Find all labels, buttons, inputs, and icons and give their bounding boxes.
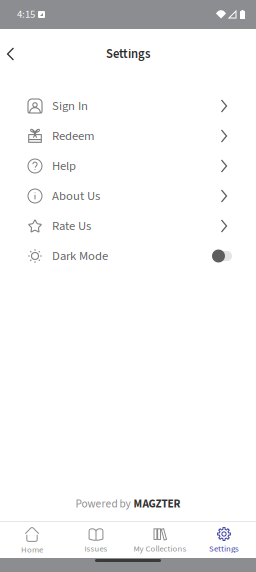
button[interactable]: Back xyxy=(0,29,25,79)
button[interactable]: Home xyxy=(0,521,64,558)
staticText: About Us xyxy=(52,187,100,205)
button[interactable]: About Us xyxy=(0,181,256,211)
staticText: Issues xyxy=(84,542,107,555)
button[interactable]: Rate Us xyxy=(0,211,256,241)
button[interactable]: Redeem xyxy=(0,121,256,151)
staticText: Redeem xyxy=(52,127,95,145)
staticText: Dark Mode xyxy=(52,247,108,265)
staticText: Home xyxy=(21,543,43,556)
staticText: Settings xyxy=(209,542,239,555)
staticText: Sign In xyxy=(52,97,88,115)
button[interactable]: Help xyxy=(0,151,256,181)
staticText: Rate Us xyxy=(52,217,91,235)
staticText: 4:15 xyxy=(17,7,35,22)
staticText: MAGZTER xyxy=(133,496,180,512)
button[interactable]: My Collections xyxy=(128,521,192,558)
staticText: My Collections xyxy=(133,542,186,555)
staticText: Powered by xyxy=(75,496,130,512)
staticText: Settings xyxy=(106,45,150,63)
staticText: Help xyxy=(52,157,76,175)
button[interactable]: Dark Mode xyxy=(0,241,256,271)
button[interactable]: Settings xyxy=(192,521,256,558)
button[interactable]: Issues xyxy=(64,521,128,558)
button[interactable]: Sign In xyxy=(0,91,256,121)
